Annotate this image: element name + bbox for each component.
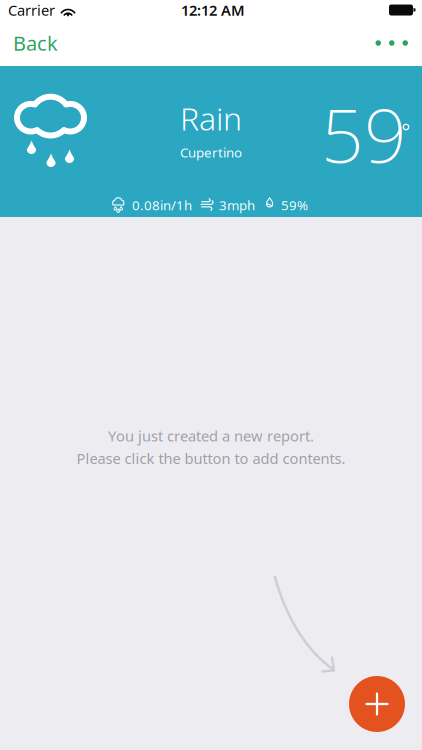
staticText: 59 — [321, 84, 407, 184]
button[interactable]: Add report — [349, 676, 405, 732]
staticText: 3mph — [219, 196, 255, 214]
staticText: Back — [13, 30, 58, 56]
staticText: 59% — [281, 196, 308, 214]
staticText: Cupertino — [180, 143, 242, 161]
staticText: 12:12 AM — [181, 0, 245, 20]
staticText: 0.08in/1h — [132, 196, 192, 214]
button[interactable]: More options — [357, 20, 422, 66]
staticText: Rain — [180, 97, 242, 139]
staticText: You just created a new report. — [108, 426, 314, 445]
button[interactable]: Back — [0, 20, 72, 66]
staticText: Please click the button to add contents. — [76, 448, 345, 468]
staticText: Carrier — [8, 0, 55, 20]
